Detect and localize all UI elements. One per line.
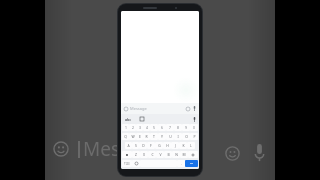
staticText: M xyxy=(182,152,186,157)
staticText: S xyxy=(135,143,137,148)
button[interactable]: Q xyxy=(122,133,129,140)
staticText: 6 xyxy=(161,125,163,130)
staticText: U xyxy=(169,134,172,139)
staticText: R xyxy=(145,134,148,139)
button[interactable]: S xyxy=(132,142,139,149)
button[interactable]: Sticker xyxy=(140,117,144,121)
staticText: E xyxy=(139,134,141,139)
button[interactable]: Emoji xyxy=(132,160,140,167)
button[interactable]: M xyxy=(180,151,188,158)
button[interactable]: 2 xyxy=(129,124,136,131)
button[interactable]: K xyxy=(179,142,187,149)
staticText: C xyxy=(151,152,154,157)
staticText: B xyxy=(167,152,170,157)
button[interactable]: W xyxy=(129,133,136,140)
button[interactable]: G xyxy=(155,142,163,149)
staticText: V xyxy=(159,152,162,157)
other: Emoji xyxy=(186,107,190,111)
button[interactable]: 1 xyxy=(122,124,129,131)
other: Voice xyxy=(193,106,196,111)
button[interactable]: J xyxy=(171,142,179,149)
staticText: P xyxy=(193,134,196,139)
button[interactable]: Shift xyxy=(122,151,132,158)
other: Add xyxy=(124,107,128,111)
button[interactable]: Voice input xyxy=(193,117,196,122)
button[interactable]: E xyxy=(136,133,143,140)
staticText: I xyxy=(177,134,179,139)
button[interactable]: abc xyxy=(124,116,133,123)
staticText: X xyxy=(143,152,145,157)
button[interactable]: 7 xyxy=(166,124,174,131)
button[interactable]: A xyxy=(125,142,132,149)
staticText: 4 xyxy=(146,125,148,130)
staticText: T xyxy=(153,134,155,139)
staticText: Messag xyxy=(83,136,152,162)
staticText: Message xyxy=(130,106,147,111)
staticText: W xyxy=(131,134,135,139)
button[interactable]: Send xyxy=(185,160,198,167)
button[interactable]: Z xyxy=(132,151,140,158)
staticText: O xyxy=(185,134,188,139)
staticText: A xyxy=(127,143,130,148)
button[interactable]: R xyxy=(143,133,150,140)
button[interactable]: V xyxy=(156,151,164,158)
button[interactable]: O xyxy=(182,133,190,140)
staticText: 8 xyxy=(177,125,179,130)
staticText: 3 xyxy=(139,125,141,130)
button[interactable]: Backspace xyxy=(188,151,198,158)
staticText: 9 xyxy=(185,125,187,130)
staticText: 0 xyxy=(193,125,195,130)
button[interactable]: U xyxy=(166,133,174,140)
button[interactable]: 4 xyxy=(143,124,150,131)
button[interactable]: X xyxy=(140,151,148,158)
staticText: ?123 xyxy=(124,162,130,166)
button[interactable]: H xyxy=(163,142,171,149)
staticText: G xyxy=(158,143,161,148)
button[interactable]: 6 xyxy=(158,124,166,131)
button[interactable]: Add xyxy=(121,103,199,114)
button[interactable]: ?123 xyxy=(122,160,132,167)
staticText: 5 xyxy=(153,125,155,130)
button[interactable]: 5 xyxy=(150,124,158,131)
staticText: 1 xyxy=(125,125,127,130)
staticText: N xyxy=(175,152,178,157)
button[interactable]: P xyxy=(190,133,198,140)
staticText: K xyxy=(182,143,185,148)
button[interactable]: 0 xyxy=(190,124,198,131)
button[interactable]: C xyxy=(148,151,156,158)
staticText: abc xyxy=(125,117,132,122)
button[interactable]: 3 xyxy=(136,124,143,131)
button[interactable]: I xyxy=(174,133,182,140)
staticText: H xyxy=(166,143,169,148)
button[interactable]: 8 xyxy=(174,124,182,131)
staticText: Q xyxy=(124,134,127,139)
button[interactable]: F xyxy=(147,142,155,149)
button[interactable]: 9 xyxy=(182,124,190,131)
button[interactable]: Y xyxy=(158,133,166,140)
staticText: Y xyxy=(161,134,163,139)
staticText: J xyxy=(175,143,176,148)
staticText: Z xyxy=(135,152,137,157)
staticText: . xyxy=(181,162,182,166)
staticText: 2 xyxy=(132,125,134,130)
button[interactable]: B xyxy=(164,151,172,158)
button[interactable]: T xyxy=(150,133,158,140)
button[interactable]: N xyxy=(172,151,180,158)
staticText: 7 xyxy=(169,125,171,130)
staticText: F xyxy=(150,143,152,148)
button[interactable]: D xyxy=(139,142,147,149)
staticText: D xyxy=(142,143,145,148)
staticText: L xyxy=(190,143,192,148)
button[interactable]: L xyxy=(187,142,195,149)
